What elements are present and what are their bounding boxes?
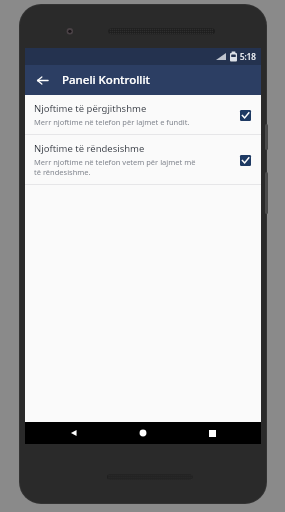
staticText: Paneli Kontrollit (62, 72, 150, 88)
staticText: Merr njoftime në telefon vetem për lajme… (34, 157, 196, 177)
button[interactable]: Njoftime të rëndesishme (25, 135, 261, 184)
button[interactable]: Toggle notification (238, 153, 252, 167)
button[interactable]: Recent apps (192, 422, 232, 444)
staticText: Njoftime të rëndesishme (34, 142, 145, 155)
button[interactable]: Back (54, 422, 94, 444)
staticText: Merr njoftime në telefon për lajmet e fu… (34, 117, 190, 127)
staticText: 5:18 (240, 51, 256, 62)
button[interactable]: Back (30, 68, 54, 92)
button[interactable]: Njoftime të përgjithshme (25, 95, 261, 134)
button[interactable]: Home (123, 422, 163, 444)
button[interactable]: Toggle notification (238, 108, 252, 122)
staticText: Njoftime të përgjithshme (34, 102, 147, 115)
